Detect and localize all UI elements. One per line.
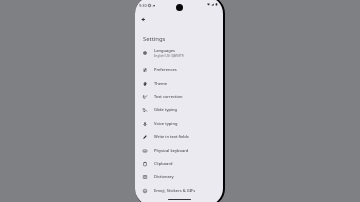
staticText: Settings [143, 35, 166, 43]
staticText: Glide typing [154, 107, 178, 112]
staticText: Emoji, Stickers & GIFs [154, 188, 196, 193]
button[interactable]: Voice typing [135, 117, 223, 130]
button[interactable]: Theme [135, 77, 223, 90]
button[interactable]: Dictionary [135, 170, 223, 183]
staticText: Voice typing [154, 121, 178, 126]
button[interactable]: Back [139, 15, 147, 23]
button[interactable]: Preferences [135, 63, 223, 76]
staticText: Write in text fields [154, 134, 189, 139]
staticText: Physical keyboard [154, 148, 189, 153]
staticText: Dictionary [154, 174, 174, 179]
button[interactable]: Glide typing [135, 103, 223, 116]
button[interactable]: Text correction [135, 90, 223, 103]
staticText: Clipboard [154, 161, 173, 166]
button[interactable]: Write in text fields [135, 130, 223, 143]
staticText: English (US) (QWERTY) [154, 54, 185, 58]
staticText: Text correction [154, 94, 183, 99]
staticText: Theme [154, 81, 168, 86]
staticText: Languages [154, 48, 175, 53]
staticText: 9:30 [139, 3, 147, 8]
staticText: Preferences [154, 67, 177, 72]
button[interactable]: Physical keyboard [135, 144, 223, 157]
button[interactable]: Clipboard [135, 157, 223, 170]
button[interactable]: Emoji, Stickers & GIFs [135, 184, 223, 197]
button[interactable]: Languages [135, 44, 223, 61]
